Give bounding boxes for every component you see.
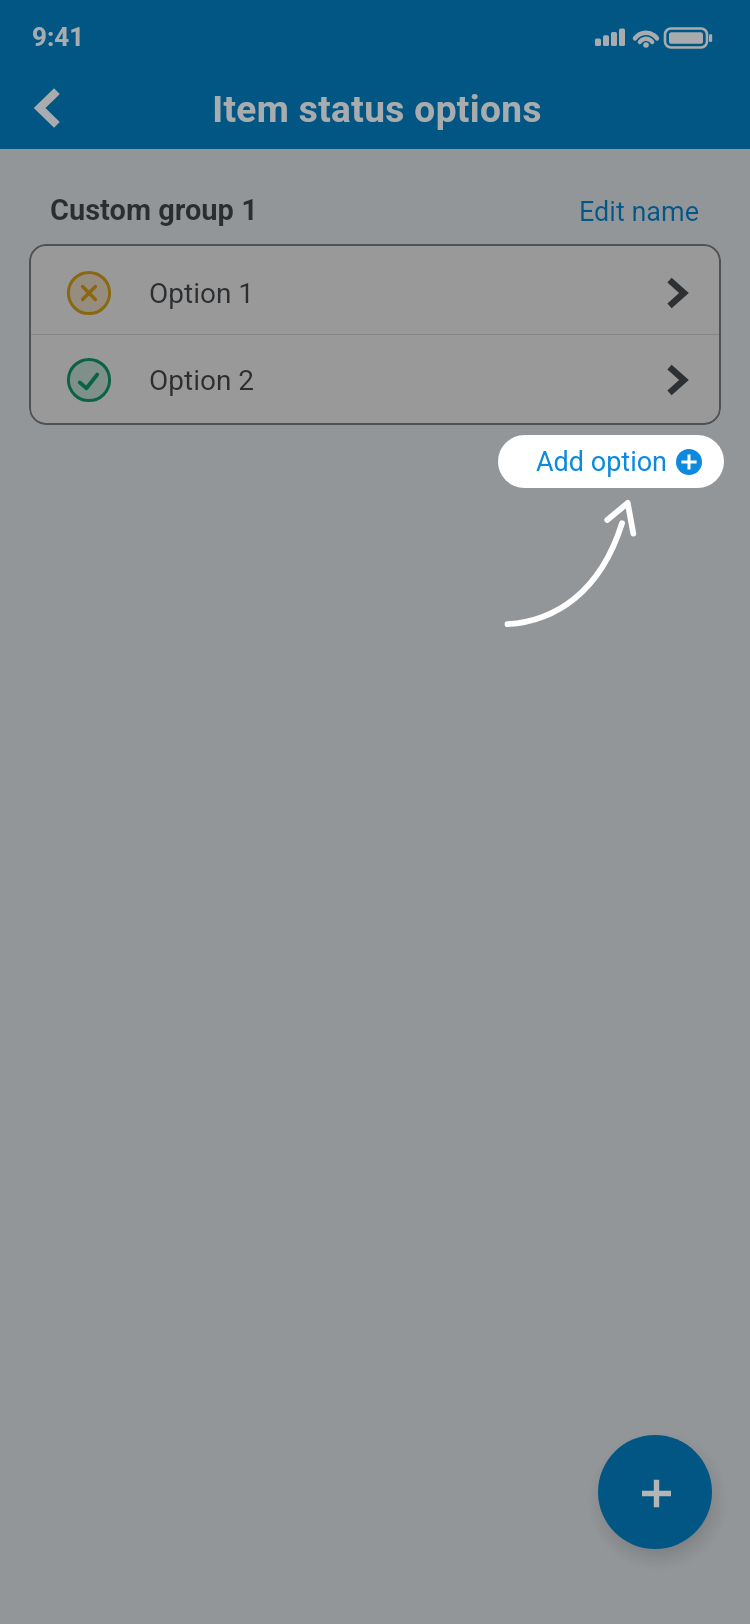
button[interactable]: Add option (498, 435, 724, 488)
button[interactable]: Option 2 (29, 335, 721, 425)
staticText: Option 1 (149, 277, 255, 310)
button[interactable]: Add (598, 1435, 712, 1549)
staticText: Edit name (579, 196, 700, 228)
staticText: Item status options (2, 88, 750, 131)
staticText: Custom group 1 (50, 193, 258, 227)
staticText: Option 2 (149, 364, 255, 397)
button[interactable]: Option 1 (29, 244, 721, 334)
staticText: 9:41 (32, 22, 85, 52)
button[interactable]: Edit name (577, 192, 702, 232)
staticText: Add option (536, 446, 668, 478)
button[interactable]: Back (18, 78, 78, 138)
